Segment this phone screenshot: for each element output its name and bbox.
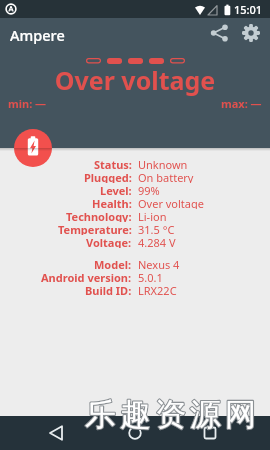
button[interactable]	[14, 129, 52, 167]
staticText: Build ID:	[85, 283, 132, 296]
staticText: Model:	[94, 257, 132, 270]
staticText: Status:	[94, 157, 132, 170]
staticText: Temperature:	[58, 222, 132, 235]
staticText: Technology:	[66, 209, 132, 222]
staticText: 乐趣资源网	[83, 395, 258, 434]
staticText: Over voltage	[138, 196, 204, 209]
staticText: Android version:	[41, 270, 132, 283]
staticText: max: —	[221, 96, 262, 111]
staticText: min: —	[8, 96, 47, 111]
staticText: On battery	[138, 170, 194, 183]
button[interactable]	[240, 22, 262, 44]
staticText: Plugged:	[84, 170, 132, 183]
staticText: Over voltage	[0, 63, 270, 97]
staticText: Unknown	[138, 157, 188, 170]
staticText: 乐趣资源网	[83, 395, 258, 434]
staticText: Voltage:	[86, 235, 132, 248]
staticText: 15:01	[234, 2, 263, 17]
staticText: Li-ion	[138, 209, 167, 222]
button[interactable]	[121, 419, 149, 447]
staticText: 5.0.1	[138, 270, 163, 283]
button[interactable]	[42, 419, 70, 447]
button[interactable]	[209, 23, 229, 43]
staticText: LRX22C	[138, 283, 177, 296]
staticText: 4.284 V	[138, 235, 176, 248]
staticText: Nexus 4	[138, 257, 180, 270]
staticText: Health:	[92, 196, 132, 209]
staticText: 31.5 °C	[138, 222, 175, 235]
staticText: Level:	[100, 183, 132, 196]
button[interactable]	[196, 419, 224, 447]
staticText: Ampere	[10, 25, 65, 45]
staticText: 99%	[138, 183, 160, 196]
